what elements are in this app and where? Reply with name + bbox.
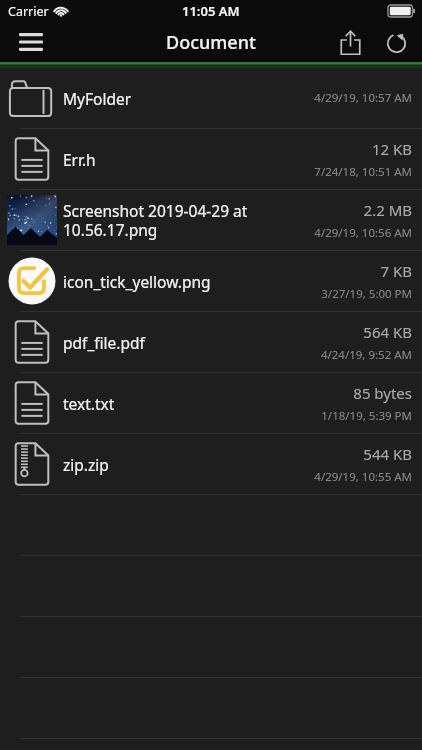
- button[interactable]: pdf_file.pdf: [0, 312, 422, 372]
- staticText: MyFolder: [63, 88, 132, 109]
- staticText: Screenshot 2019-04-29 at 10.56.17.png: [63, 200, 284, 241]
- staticText: 4/29/19, 10:56 AM: [314, 225, 412, 241]
- staticText: Document: [166, 30, 256, 55]
- staticText: 7 KB: [380, 261, 412, 281]
- staticText: 12 KB: [371, 139, 412, 159]
- button[interactable]: Err.h: [0, 129, 422, 189]
- staticText: 2.2 MB: [363, 200, 412, 220]
- button[interactable]: Share: [330, 24, 370, 60]
- button[interactable]: zip.zip: [0, 434, 422, 494]
- staticText: Err.h: [63, 149, 96, 170]
- staticText: 85 bytes: [353, 383, 412, 403]
- staticText: 564 KB: [363, 322, 412, 342]
- staticText: Carrier: [8, 3, 49, 20]
- button[interactable]: icon_tick_yellow.png: [0, 251, 422, 311]
- button[interactable]: MyFolder: [0, 68, 422, 128]
- button[interactable]: Refresh: [376, 24, 416, 60]
- staticText: icon_tick_yellow.png: [63, 271, 211, 292]
- staticText: text.txt: [63, 393, 115, 414]
- button[interactable]: Screenshot 2019-04-29 at 10.56.17.png: [0, 190, 422, 250]
- staticText: 544 KB: [363, 444, 412, 464]
- staticText: pdf_file.pdf: [63, 332, 145, 353]
- staticText: zip.zip: [63, 454, 109, 475]
- staticText: 3/27/19, 5:00 PM: [321, 286, 412, 302]
- staticText: 11:05 AM: [182, 2, 240, 20]
- button[interactable]: Menu: [10, 25, 52, 59]
- staticText: 7/24/18, 10:51 AM: [314, 164, 412, 180]
- staticText: 4/24/19, 9:52 AM: [320, 347, 412, 363]
- button[interactable]: text.txt: [0, 373, 422, 433]
- staticText: 4/29/19, 10:57 AM: [314, 90, 412, 106]
- staticText: 4/29/19, 10:55 AM: [314, 469, 412, 485]
- staticText: 1/18/19, 5:39 PM: [321, 408, 412, 424]
